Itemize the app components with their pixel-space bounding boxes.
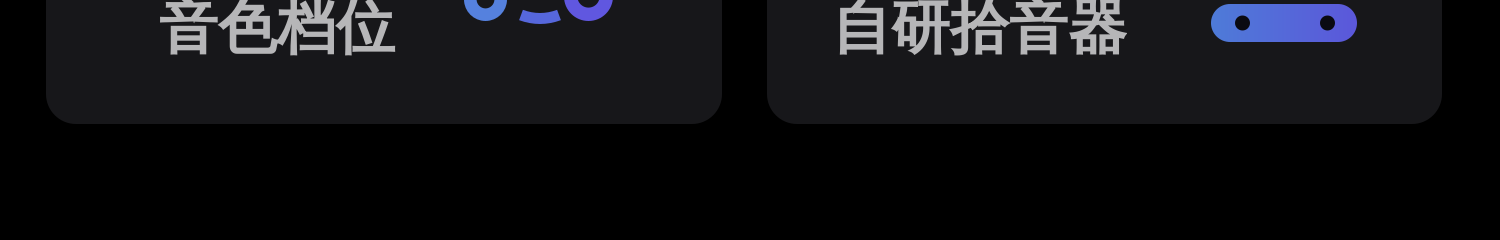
button[interactable]: 自研拾音器 <box>767 0 1442 124</box>
staticText: 自研拾音器 <box>832 0 1127 64</box>
staticText: 音色档位 <box>159 0 395 64</box>
button[interactable]: 音色档位 <box>46 0 722 124</box>
